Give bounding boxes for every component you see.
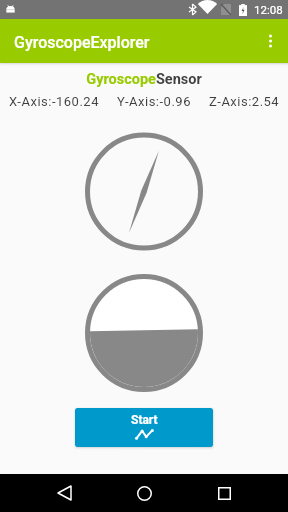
staticText: 12:08 [254,3,283,16]
staticText: Start [131,413,158,427]
button[interactable]: Start [75,408,213,447]
staticText: X-Axis:-160.24 [9,94,99,109]
staticText: GyroscopeSensor [0,71,288,88]
staticText: Z-Axis:2.54 [209,94,280,109]
button[interactable]: Back [44,474,84,512]
button[interactable]: More options [252,19,288,63]
button[interactable]: Recent apps [204,474,244,512]
staticText: GyroscopeExplorer [14,33,150,52]
staticText: Y-Axis:-0.96 [117,94,191,109]
button[interactable]: Home [124,474,164,512]
